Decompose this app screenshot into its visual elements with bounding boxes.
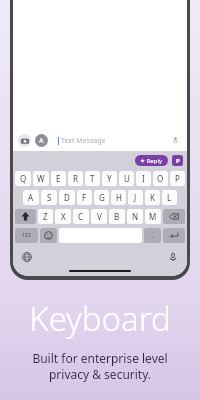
button[interactable]: Backspace: [163, 209, 185, 224]
staticText: S: [47, 192, 52, 203]
staticText: B: [114, 211, 120, 222]
button[interactable]: ✦ Reply: [135, 155, 168, 166]
staticText: E: [56, 173, 61, 184]
staticText: X: [61, 211, 66, 222]
staticText: O: [157, 173, 164, 184]
staticText: Q: [20, 173, 27, 184]
button[interactable]: A: [23, 190, 39, 205]
button[interactable]: M: [145, 209, 161, 224]
button[interactable]: Q: [15, 171, 31, 186]
button[interactable]: O: [153, 171, 168, 186]
staticText: P: [175, 173, 180, 184]
staticText: W: [37, 173, 45, 184]
staticText: M: [149, 211, 157, 222]
staticText: Text Message: [61, 136, 106, 146]
staticText: ✦ Reply: [140, 157, 163, 165]
staticText: U: [124, 173, 130, 184]
staticText: 123: [22, 232, 31, 239]
staticText: G: [99, 192, 105, 203]
staticText: A: [28, 192, 34, 203]
button[interactable]: B: [109, 209, 125, 224]
button[interactable]: I: [136, 171, 151, 186]
button[interactable]: Return: [163, 228, 185, 243]
button[interactable]: D: [59, 190, 75, 205]
staticText: H: [116, 192, 122, 203]
button[interactable]: R: [68, 171, 83, 186]
staticText: Built for enterprise level privacy & sec…: [32, 350, 168, 382]
button[interactable]: J: [128, 190, 143, 205]
button[interactable]: N: [127, 209, 143, 224]
staticText: J: [134, 192, 137, 203]
button[interactable]: P: [170, 171, 185, 186]
staticText: Y: [107, 173, 112, 184]
button[interactable]: G: [94, 190, 109, 205]
button[interactable]: W: [33, 171, 49, 186]
button[interactable]: H: [111, 190, 126, 205]
staticText: T: [90, 173, 95, 184]
button[interactable]: Keyboard app: [172, 155, 183, 166]
button[interactable]: Y: [102, 171, 117, 186]
staticText: N: [132, 211, 139, 222]
button[interactable]: F: [77, 190, 92, 205]
button[interactable]: Voice input: [167, 251, 179, 263]
button[interactable]: .: [144, 228, 161, 243]
staticText: D: [64, 192, 70, 203]
button[interactable]: Z: [38, 209, 53, 224]
button[interactable]: L: [162, 190, 177, 205]
button[interactable]: S: [41, 190, 57, 205]
staticText: V: [97, 211, 102, 222]
staticText: A: [39, 136, 44, 146]
button[interactable]: Change language: [21, 251, 33, 263]
button[interactable]: 123: [15, 228, 38, 243]
staticText: C: [78, 211, 84, 222]
staticText: I: [142, 173, 145, 184]
staticText: P: [176, 157, 180, 165]
staticText: K: [150, 192, 155, 203]
staticText: .: [152, 231, 154, 241]
staticText: F: [82, 192, 87, 203]
staticText: R: [73, 173, 78, 184]
button[interactable]: V: [91, 209, 107, 224]
button[interactable]: U: [119, 171, 134, 186]
button[interactable]: X: [55, 209, 71, 224]
button[interactable]: Emoji: [40, 228, 57, 243]
staticText: Keyboard: [29, 296, 171, 341]
staticText: Z: [43, 211, 48, 222]
button[interactable]: E: [51, 171, 66, 186]
button[interactable]: C: [73, 209, 89, 224]
button[interactable]: K: [145, 190, 160, 205]
button[interactable]: Apps: [35, 134, 48, 147]
staticText: L: [167, 192, 172, 203]
button[interactable]: Shift: [15, 209, 36, 224]
other: Dictate: [172, 137, 179, 144]
button[interactable]: Camera: [18, 134, 31, 147]
button[interactable]: T: [85, 171, 100, 186]
button[interactable]: Text Message: [53, 133, 182, 148]
